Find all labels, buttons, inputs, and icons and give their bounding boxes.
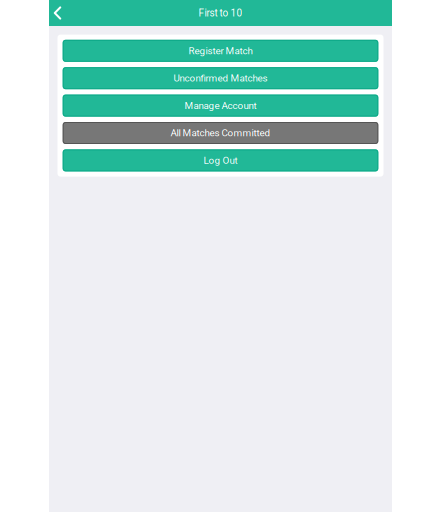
staticText: Manage Account — [184, 100, 256, 111]
button[interactable]: All Matches Committed — [63, 122, 378, 144]
staticText: All Matches Committed — [170, 127, 270, 139]
staticText: Unconfirmed Matches — [173, 72, 267, 84]
button[interactable]: Back — [49, 0, 66, 26]
staticText: Register Match — [188, 45, 252, 57]
button[interactable]: Manage Account — [63, 95, 378, 117]
button[interactable]: Log Out — [63, 149, 378, 171]
staticText: Log Out — [203, 155, 237, 166]
button[interactable]: Unconfirmed Matches — [63, 67, 378, 89]
button[interactable]: Register Match — [63, 40, 378, 62]
staticText: First to 10 — [198, 7, 242, 19]
